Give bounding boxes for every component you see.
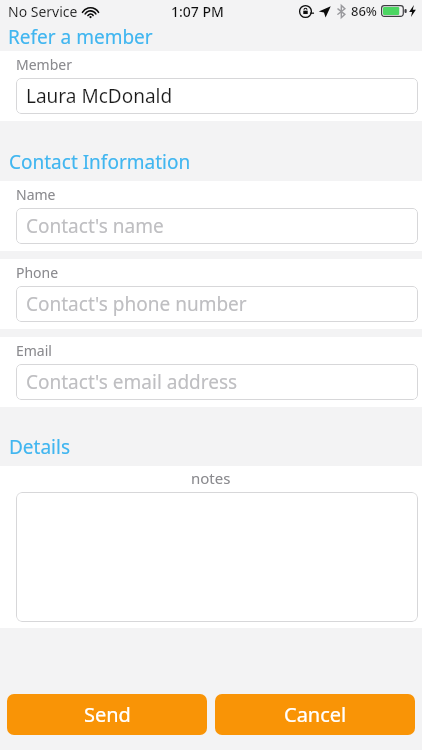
staticText: notes — [191, 468, 231, 488]
staticText: Cancel — [284, 701, 347, 728]
staticText: Phone — [16, 263, 59, 282]
button[interactable]: Contact's email address — [16, 364, 418, 400]
button[interactable]: Contact's name — [16, 208, 418, 244]
staticText: Member — [16, 55, 72, 74]
staticText: 1:07 PM — [171, 2, 224, 21]
staticText: Contact's email address — [26, 369, 238, 395]
staticText: Name — [16, 185, 56, 204]
button[interactable]: Contact's phone number — [16, 286, 418, 322]
button[interactable]: Laura McDonald — [16, 78, 418, 114]
staticText: Contact Information — [9, 149, 191, 175]
staticText: 86% — [351, 2, 377, 20]
button[interactable]: Refer a member — [0, 22, 422, 51]
staticText: Contact's name — [26, 213, 164, 239]
button[interactable]: Send — [7, 694, 207, 735]
staticText: Refer a member — [8, 24, 153, 50]
staticText: Email — [16, 341, 52, 360]
staticText: Send — [84, 701, 131, 728]
staticText: Details — [9, 434, 71, 460]
button[interactable]: Cancel — [215, 694, 415, 735]
staticText: No Service — [8, 2, 78, 21]
button[interactable] — [16, 492, 418, 622]
staticText: Contact's phone number — [26, 291, 247, 317]
staticText: Laura McDonald — [26, 83, 173, 109]
